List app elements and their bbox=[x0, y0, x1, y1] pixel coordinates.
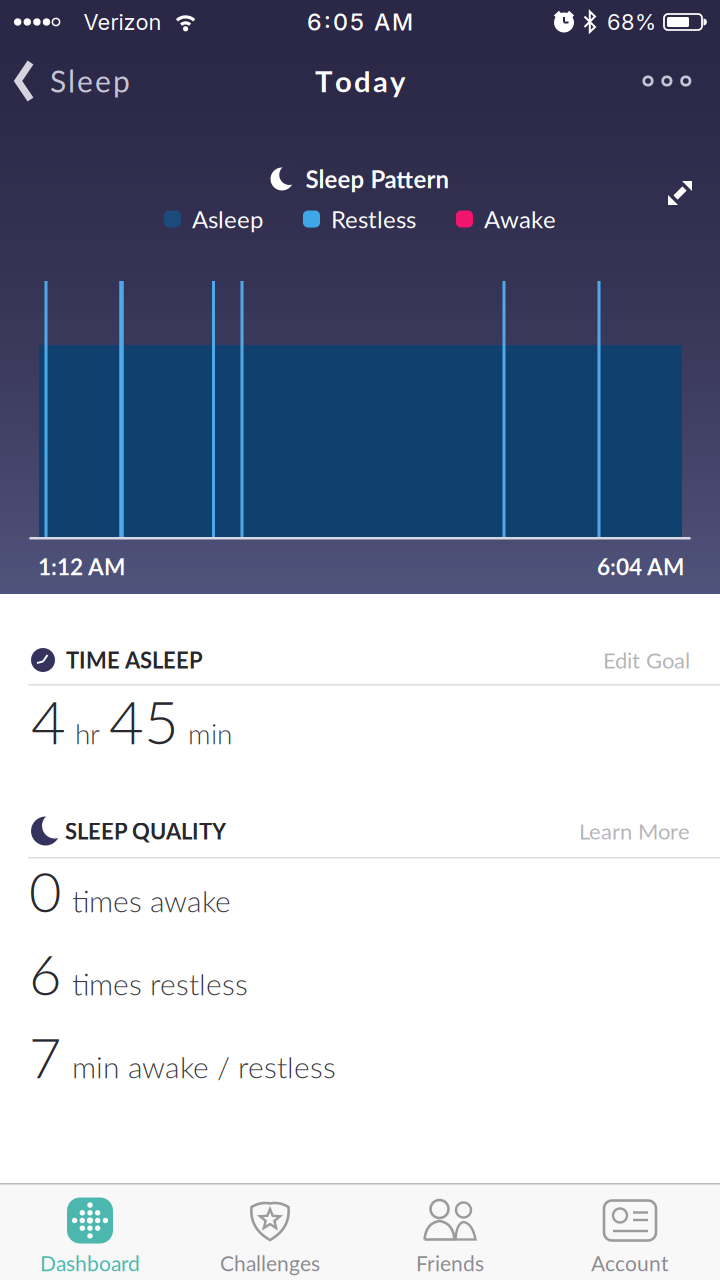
staticText: hr bbox=[75, 717, 100, 750]
staticText: TIME ASLEEP bbox=[66, 647, 203, 673]
staticText: 0 bbox=[29, 857, 61, 924]
button[interactable]: Dashboard bbox=[0, 1196, 180, 1276]
staticText: 6 : 0 5 A M bbox=[307, 8, 413, 36]
staticText: 6:04 AM bbox=[597, 553, 684, 580]
staticText: Learn More bbox=[579, 818, 690, 844]
button[interactable]: S l e e p bbox=[0, 59, 130, 103]
staticText: T o d a y bbox=[315, 63, 405, 99]
staticText: times awake bbox=[72, 883, 231, 919]
staticText: 45 bbox=[109, 685, 179, 757]
staticText: min bbox=[188, 717, 232, 750]
button[interactable]: Challenges bbox=[180, 1196, 360, 1276]
staticText: 6 bbox=[29, 940, 61, 1007]
staticText: 4 bbox=[31, 685, 66, 757]
button[interactable]: Learn More bbox=[579, 818, 690, 844]
button[interactable]: Edit Goal bbox=[603, 647, 690, 673]
staticText: Restless bbox=[331, 205, 416, 233]
staticText: Challenges bbox=[220, 1250, 320, 1276]
staticText: times restless bbox=[72, 966, 248, 1002]
button[interactable]: Account bbox=[540, 1196, 720, 1276]
staticText: Awake bbox=[484, 205, 556, 233]
staticText: Account bbox=[591, 1250, 669, 1276]
staticText: SLEEP QUALITY bbox=[65, 818, 226, 844]
staticText: Sleep Pattern bbox=[305, 165, 449, 193]
staticText: S l e e p bbox=[50, 63, 130, 99]
button[interactable]: Friends bbox=[360, 1196, 540, 1276]
staticText: 7 bbox=[29, 1023, 61, 1090]
staticText: Verizon bbox=[84, 9, 162, 35]
button[interactable] bbox=[644, 77, 720, 85]
staticText: 1:12 AM bbox=[38, 553, 125, 580]
staticText: Edit Goal bbox=[603, 647, 690, 673]
staticText: Asleep bbox=[192, 205, 263, 233]
staticText: Friends bbox=[416, 1250, 484, 1276]
button[interactable] bbox=[665, 178, 695, 208]
staticText: 68% bbox=[607, 9, 656, 35]
staticText: min awake / restless bbox=[72, 1049, 336, 1085]
staticText: Dashboard bbox=[40, 1250, 140, 1276]
